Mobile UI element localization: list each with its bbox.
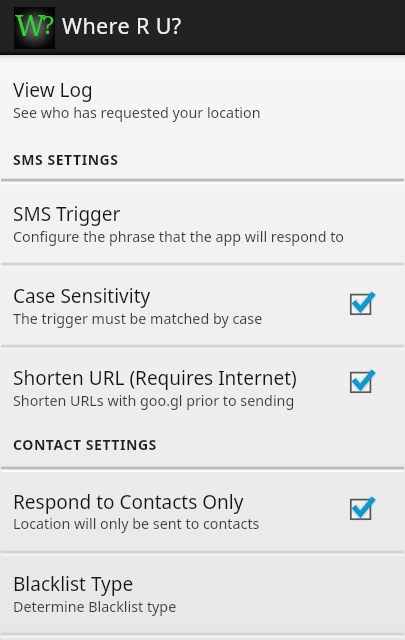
staticText: Case Sensitivity [13,283,151,309]
staticText: Shorten URL (Requires Internet) [13,365,297,391]
other: Enabled [347,496,377,524]
button[interactable]: Respond to Contacts Only [0,469,405,551]
staticText: Location will only be sent to contacts [13,514,260,533]
staticText: Configure the phrase that the app will r… [13,227,344,246]
staticText: Respond to Contacts Only [13,489,244,515]
button[interactable]: View Log [0,55,405,101]
other: App logo [14,7,55,49]
staticText: Determine Blacklist type [13,597,177,616]
staticText: Shorten URLs with goo.gl prior to sendin… [13,391,295,410]
staticText: SMS SETTINGS [13,150,119,169]
staticText: SMS Trigger [13,201,121,227]
staticText: W [15,5,46,44]
staticText: View Log [13,77,93,103]
staticText: ? [42,6,55,41]
button[interactable]: SMS Trigger [0,181,405,263]
staticText: Blacklist Type [13,571,134,597]
staticText: The trigger must be matched by case [13,309,263,328]
staticText: CONTACT SETTINGS [13,435,157,454]
button[interactable]: Blacklist Type [0,553,405,633]
staticText: See who has requested your location [13,103,261,122]
button[interactable]: Case Sensitivity [0,265,405,345]
other: Enabled [347,369,377,397]
staticText: Where R U? [62,11,182,40]
other: Enabled [347,291,377,319]
button[interactable]: Shorten URL (Requires Internet) [0,347,405,419]
